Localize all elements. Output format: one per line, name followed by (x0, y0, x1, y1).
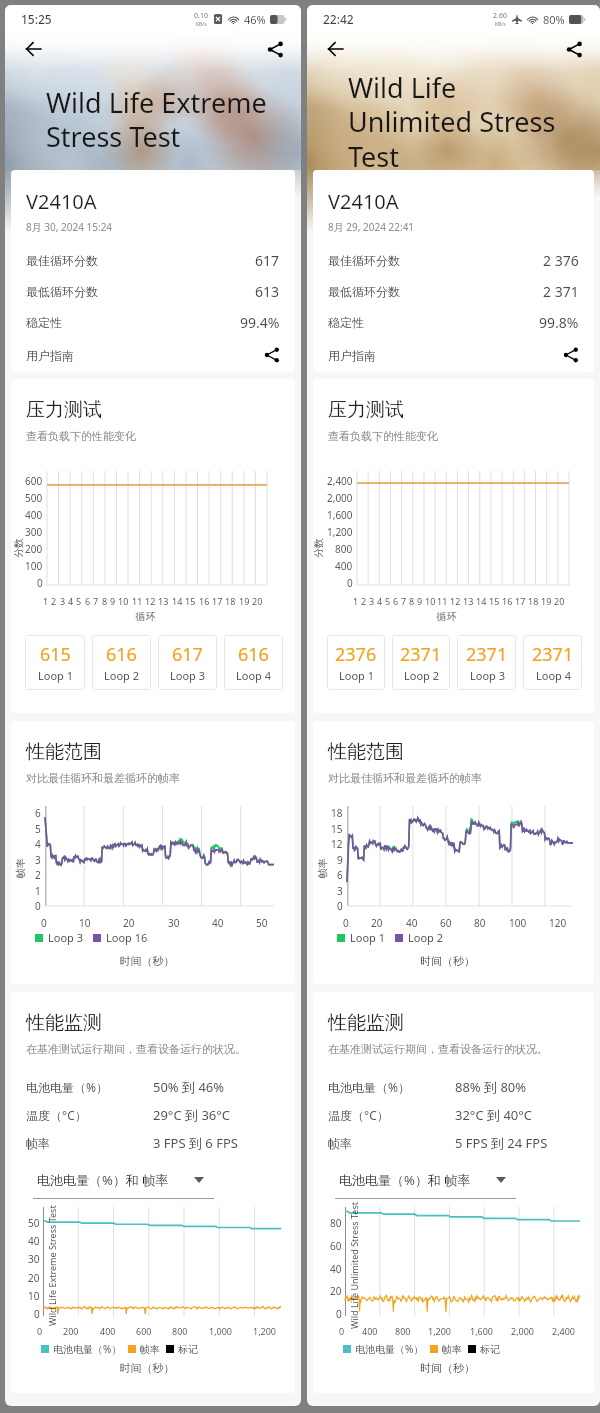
staticText: 400 (25, 508, 43, 522)
staticText: V2410A (328, 188, 399, 215)
button[interactable]: 2371 (457, 635, 516, 690)
staticText: 613 (255, 282, 280, 301)
staticText: 14 (476, 595, 487, 607)
button[interactable]: 616 (224, 635, 283, 690)
staticText: 617 (172, 642, 203, 667)
button[interactable]: Back (16, 33, 50, 65)
staticText: 3 (369, 595, 375, 607)
staticText: 60 (440, 916, 452, 930)
staticText: 压力测试 (26, 398, 102, 422)
staticText: 100 (509, 916, 527, 930)
staticText: 对比最佳循环和最差循环的帧率 (328, 771, 482, 785)
staticText: 200 (25, 542, 43, 556)
staticText: 3 (35, 853, 41, 867)
staticText: 22:42 (323, 11, 354, 27)
staticText: 8月 30, 2024 15:24 (26, 220, 113, 234)
staticText: 4 (377, 595, 383, 607)
staticText: 帧率 (140, 1343, 160, 1356)
staticText: 50 (28, 1216, 40, 1230)
staticText: 0 (41, 916, 47, 930)
staticText: 10 (79, 916, 91, 930)
staticText: 电池电量（%） (328, 1079, 410, 1095)
staticText: 0 (34, 1307, 40, 1321)
staticText: 40 (406, 916, 418, 930)
staticText: 0.10 (194, 11, 208, 21)
button[interactable]: Share (258, 33, 292, 65)
staticText: 性能范围 (328, 740, 404, 764)
staticText: 3 (60, 595, 66, 607)
button[interactable]: 用户指南 (26, 338, 280, 372)
staticText: 16 (502, 595, 513, 607)
staticText: 查看负载下的性能变化 (328, 429, 438, 443)
staticText: 0 (37, 576, 43, 590)
staticText: KB/s (495, 21, 506, 28)
staticText: 11 (132, 595, 143, 607)
button[interactable]: 电池电量（%）和 帧率 (339, 1171, 506, 1189)
button[interactable]: 617 (158, 635, 217, 690)
staticText: 46% (244, 12, 266, 27)
staticText: 5 (35, 822, 41, 836)
staticText: 查看负载下的性能变化 (26, 429, 136, 443)
staticText: 40 (330, 1262, 342, 1276)
staticText: 2.60 (493, 11, 507, 21)
staticText: 最低循环分数 (328, 284, 400, 299)
staticText: 10 (118, 595, 129, 607)
staticText: 6 (393, 595, 399, 607)
staticText: 18 (225, 595, 236, 607)
staticText: 1 (35, 884, 41, 898)
staticText: 最佳循环分数 (328, 253, 400, 268)
staticText: 19 (541, 595, 552, 607)
staticText: 120 (549, 916, 567, 930)
staticText: 6 (85, 595, 91, 607)
staticText: 2 (361, 595, 367, 607)
staticText: 电池电量（%） (26, 1079, 108, 1095)
staticText: 50 (256, 916, 268, 930)
staticText: 400 (100, 1325, 116, 1337)
staticText: 2371 (400, 642, 442, 667)
staticText: Loop 4 (236, 668, 271, 683)
staticText: 9 (417, 595, 423, 607)
button[interactable]: Back (318, 33, 352, 65)
staticText: 12 (450, 595, 461, 607)
staticText: 50% 到 46% (153, 1078, 225, 1096)
staticText: 帧率 (316, 858, 329, 878)
button[interactable]: 2371 (523, 635, 582, 690)
staticText: 40 (212, 916, 224, 930)
staticText: 11 (437, 595, 448, 607)
staticText: 2,400 (327, 474, 353, 488)
button[interactable]: 2376 (327, 635, 385, 690)
staticText: 1,600 (470, 1325, 494, 1337)
staticText: 标记 (480, 1343, 500, 1356)
staticText: 9 (110, 595, 116, 607)
staticText: Loop 2 (104, 668, 139, 683)
button[interactable]: Share (557, 33, 591, 65)
staticText: 性能监测 (26, 1011, 102, 1035)
staticText: 循环 (24, 610, 267, 623)
button[interactable]: 616 (92, 635, 151, 690)
staticText: 17 (212, 595, 223, 607)
staticText: 8 (409, 595, 415, 607)
staticText: 帧率 (328, 1136, 352, 1151)
button[interactable]: 2371 (392, 635, 450, 690)
staticText: 80 (474, 916, 486, 930)
staticText: Wild Life Unlimited Stress Test (348, 1202, 360, 1329)
staticText: 时间（秒） (11, 954, 283, 968)
staticText: 15 (331, 822, 343, 836)
staticText: 2376 (335, 642, 377, 667)
button[interactable]: 615 (25, 635, 85, 690)
button[interactable]: 用户指南 (328, 338, 579, 372)
staticText: 16 (199, 595, 210, 607)
staticText: Loop 1 (38, 668, 73, 683)
staticText: 18 (331, 806, 343, 820)
staticText: 60 (330, 1239, 342, 1253)
button[interactable]: 电池电量（%）和 帧率 (37, 1171, 204, 1189)
staticText: 88% 到 80% (455, 1078, 527, 1096)
staticText: 7 (93, 595, 99, 607)
staticText: 性能监测 (328, 1011, 404, 1035)
staticText: 帧率 (14, 858, 27, 878)
staticText: 20 (371, 916, 383, 930)
staticText: 14 (172, 595, 183, 607)
staticText: 1,000 (209, 1325, 233, 1337)
staticText: 2 371 (543, 282, 579, 301)
staticText: 2 (35, 868, 41, 882)
